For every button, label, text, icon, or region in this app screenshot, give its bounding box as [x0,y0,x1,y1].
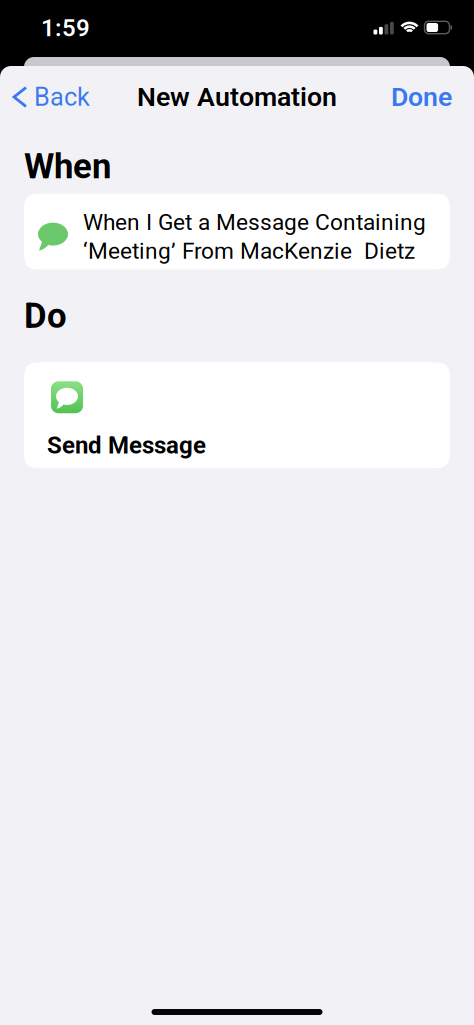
button[interactable]: Send Message [0,362,450,468]
staticText: Done [391,81,452,113]
staticText: 1:59 [41,14,90,42]
button[interactable]: Back [0,82,90,112]
button[interactable]: When I Get a Message Containing [0,194,450,270]
button[interactable]: Done [391,81,474,113]
staticText: New Automation [137,81,337,113]
staticText: Send Message [47,431,206,459]
staticText: ‘Meeting’ From MacKenzie Dietz [83,238,415,264]
staticText: When I Get a Message Containing [83,209,426,236]
staticText: Do [24,296,67,336]
staticText: Back [34,82,90,112]
staticText: When [24,146,111,187]
